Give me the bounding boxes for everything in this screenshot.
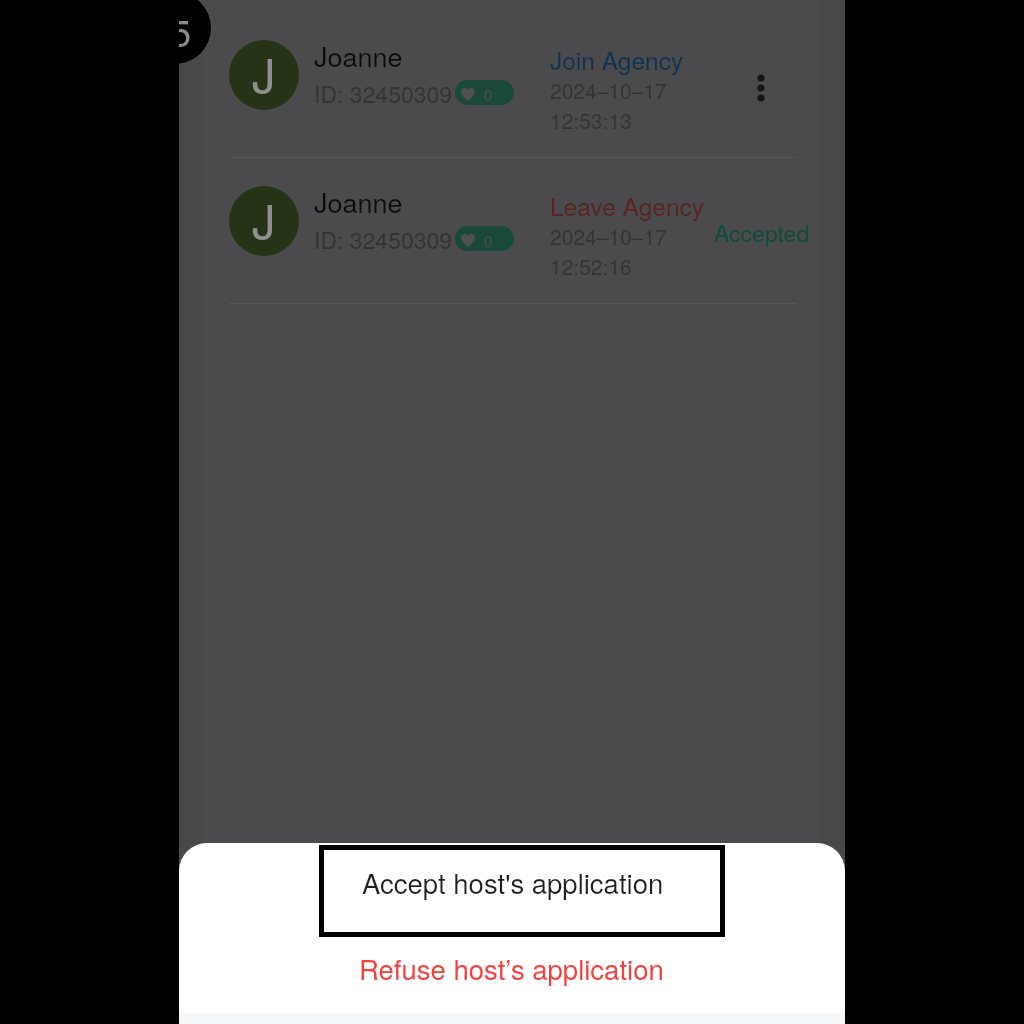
staticText: Accept host's application [362,862,664,901]
staticText: ID: 32450309 [314,223,453,256]
staticText: 5 [179,3,192,57]
staticText: 0 [484,230,493,251]
staticText: 12:52:16 [550,251,632,281]
staticText: Leave Agency [550,188,705,223]
button[interactable]: Accept host's application [319,845,725,937]
button[interactable]: Profile photo [179,159,845,305]
button[interactable]: Profile photo [179,11,845,157]
button[interactable]: Likes [455,80,514,105]
staticText: Accepted [714,216,810,249]
staticText: ID: 32450309 [314,77,453,110]
staticText: 0 [484,84,493,105]
staticText: Refuse host’s application [359,948,664,987]
staticText: Join Agency [550,42,684,77]
staticText: Joanne [314,36,403,75]
staticText: 2024–10–17 [550,75,667,105]
button[interactable]: Likes [455,226,514,251]
button[interactable]: Refuse host’s application [179,938,845,996]
button[interactable]: Profile photo [229,186,299,256]
staticText: Joanne [314,182,403,221]
staticText: J [252,40,276,106]
button[interactable]: Profile photo [229,40,299,110]
staticText: J [252,186,276,252]
staticText: 12:53:13 [550,105,632,135]
button[interactable]: More options [741,60,781,100]
staticText: 2024–10–17 [550,221,667,251]
